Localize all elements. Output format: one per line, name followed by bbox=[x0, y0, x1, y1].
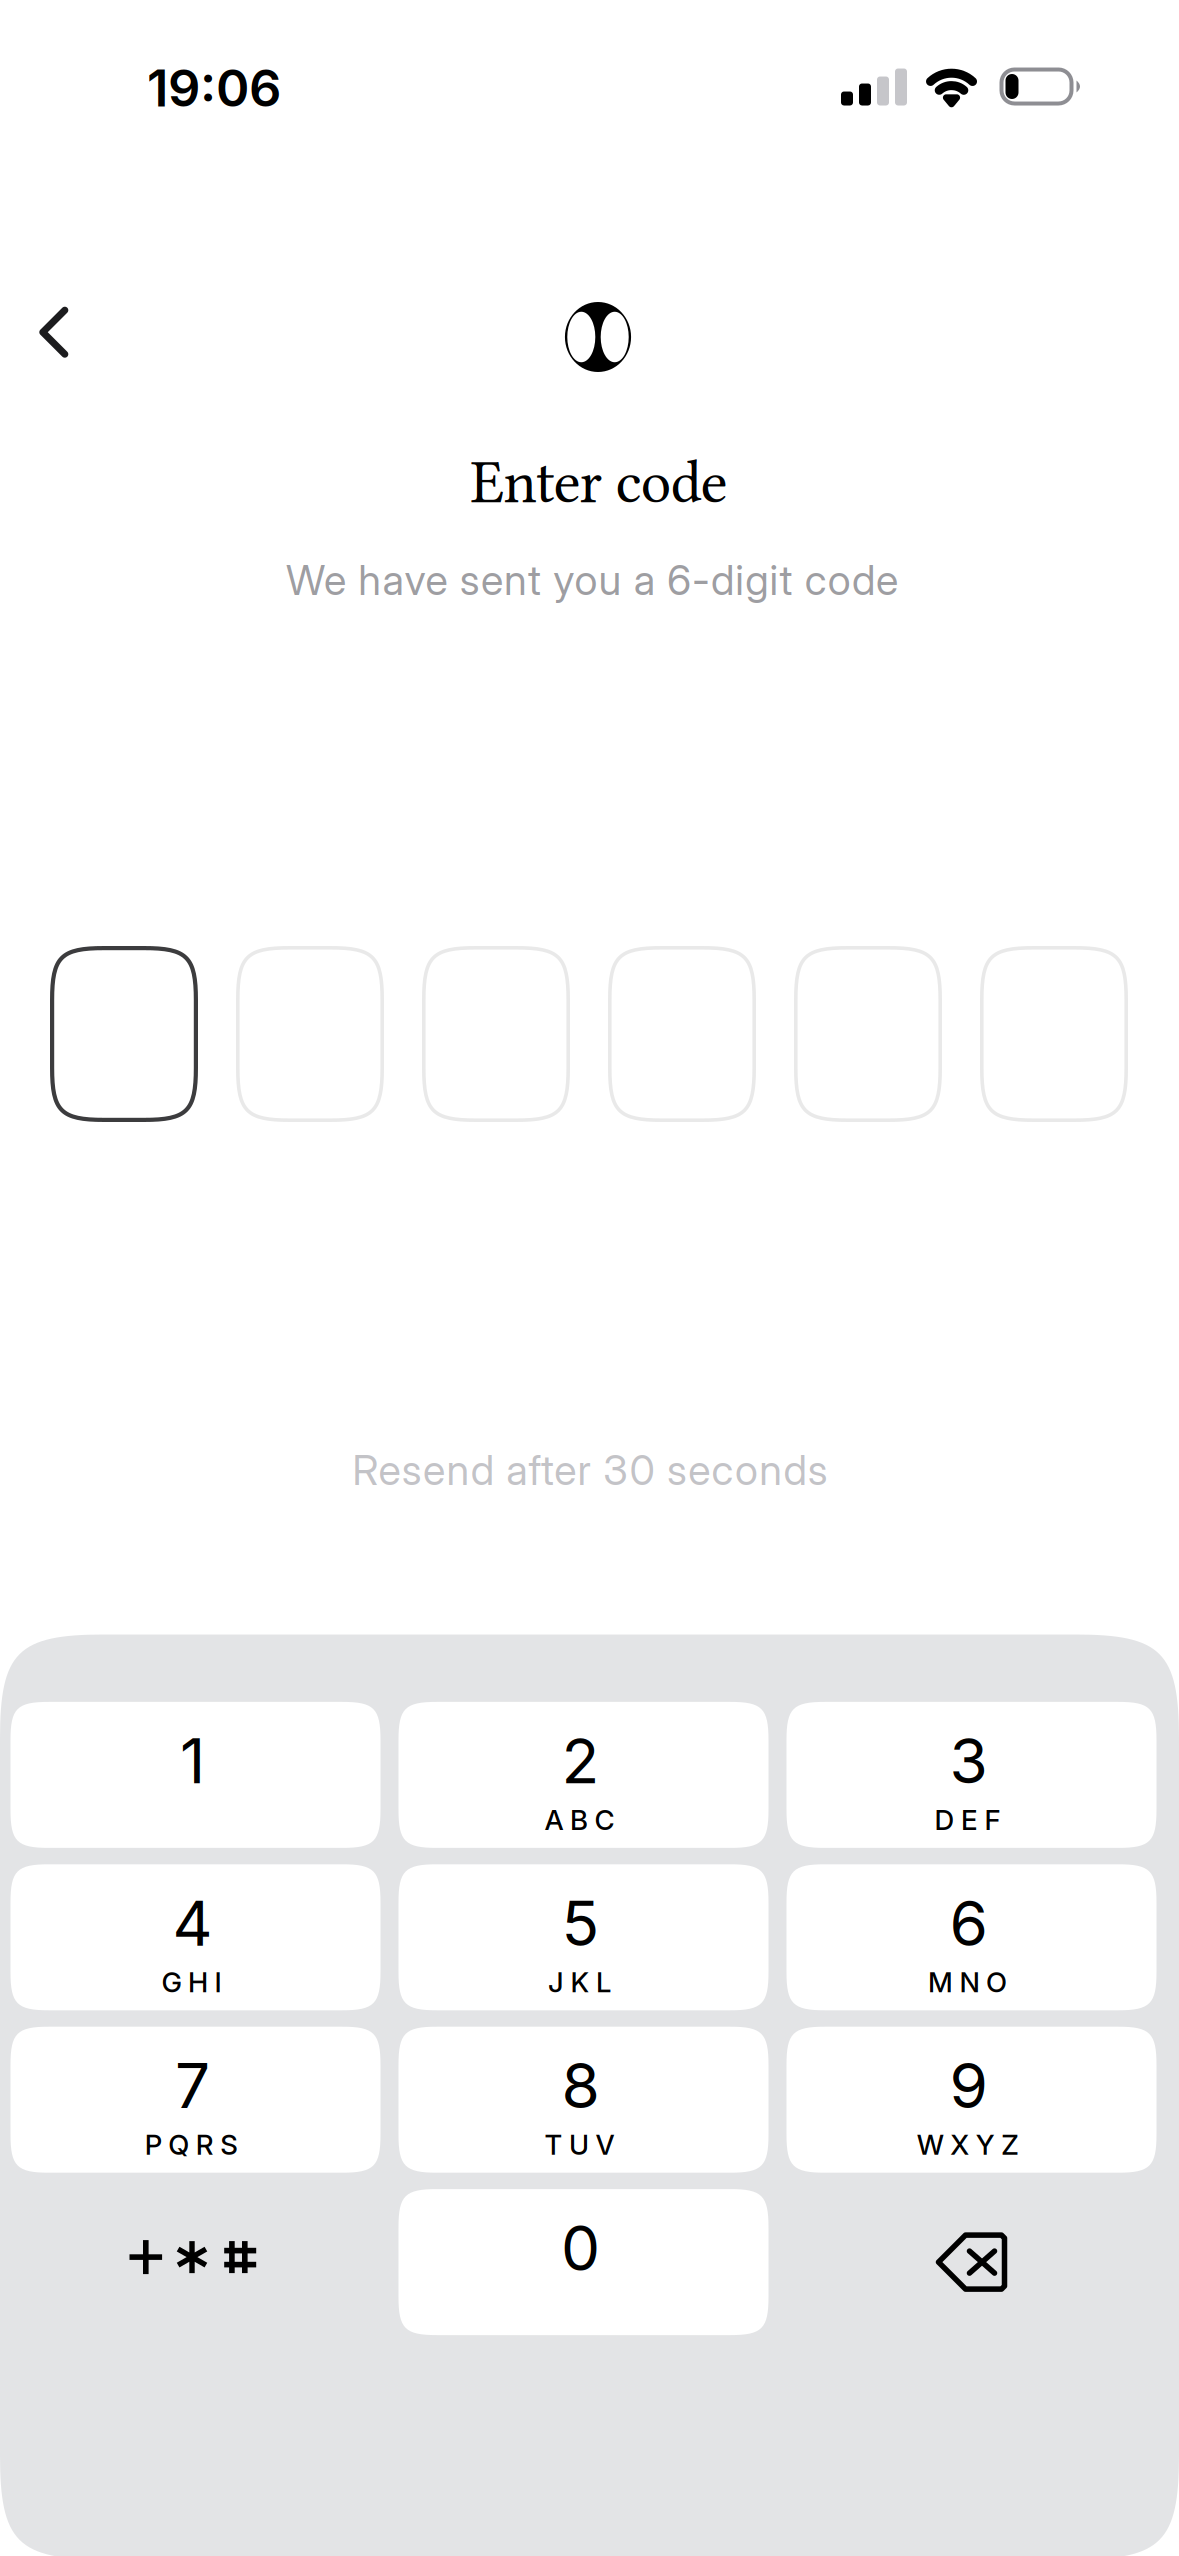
staticText: 5 bbox=[561, 1886, 599, 1961]
staticText: JKL bbox=[548, 1966, 611, 1999]
staticText: 3 bbox=[949, 1723, 987, 1798]
staticText: TUV bbox=[544, 2128, 614, 2161]
button[interactable]: 8 bbox=[398, 2027, 768, 2173]
button[interactable]: 6 bbox=[786, 1864, 1156, 2010]
button[interactable]: Symbols bbox=[10, 2189, 380, 2335]
staticText: ABC bbox=[544, 1803, 614, 1837]
staticText: PQRS bbox=[145, 2128, 238, 2161]
button[interactable]: 5 bbox=[398, 1864, 768, 2010]
button[interactable]: 4 bbox=[10, 1864, 380, 2010]
button[interactable]: 7 bbox=[10, 2027, 380, 2173]
button[interactable]: Back bbox=[4, 282, 104, 382]
button[interactable]: 0 bbox=[398, 2189, 768, 2335]
staticText: Enter code bbox=[470, 447, 727, 517]
staticText: 19:06 bbox=[147, 57, 281, 119]
staticText: Resend after 30 seconds bbox=[352, 1445, 828, 1495]
button[interactable]: 9 bbox=[786, 2027, 1156, 2173]
staticText: 9 bbox=[949, 2048, 987, 2123]
staticText: 7 bbox=[175, 2048, 210, 2123]
button[interactable]: 1 bbox=[10, 1702, 380, 1848]
staticText: 2 bbox=[561, 1723, 599, 1798]
button[interactable]: Delete bbox=[786, 2189, 1156, 2335]
staticText: GHI bbox=[161, 1966, 221, 1999]
button[interactable]: 3 bbox=[786, 1702, 1156, 1848]
staticText: DEF bbox=[934, 1803, 1000, 1837]
staticText: WXYZ bbox=[917, 2128, 1018, 2161]
staticText: MNO bbox=[928, 1966, 1007, 1999]
staticText: 6 bbox=[949, 1886, 987, 1961]
button[interactable]: 2 bbox=[398, 1702, 768, 1848]
staticText: 4 bbox=[172, 1886, 212, 1961]
staticText: 8 bbox=[561, 2048, 599, 2123]
staticText: We have sent you a 6-digit code bbox=[286, 555, 898, 605]
staticText: 0 bbox=[561, 2210, 600, 2285]
staticText: 1 bbox=[180, 1723, 205, 1798]
